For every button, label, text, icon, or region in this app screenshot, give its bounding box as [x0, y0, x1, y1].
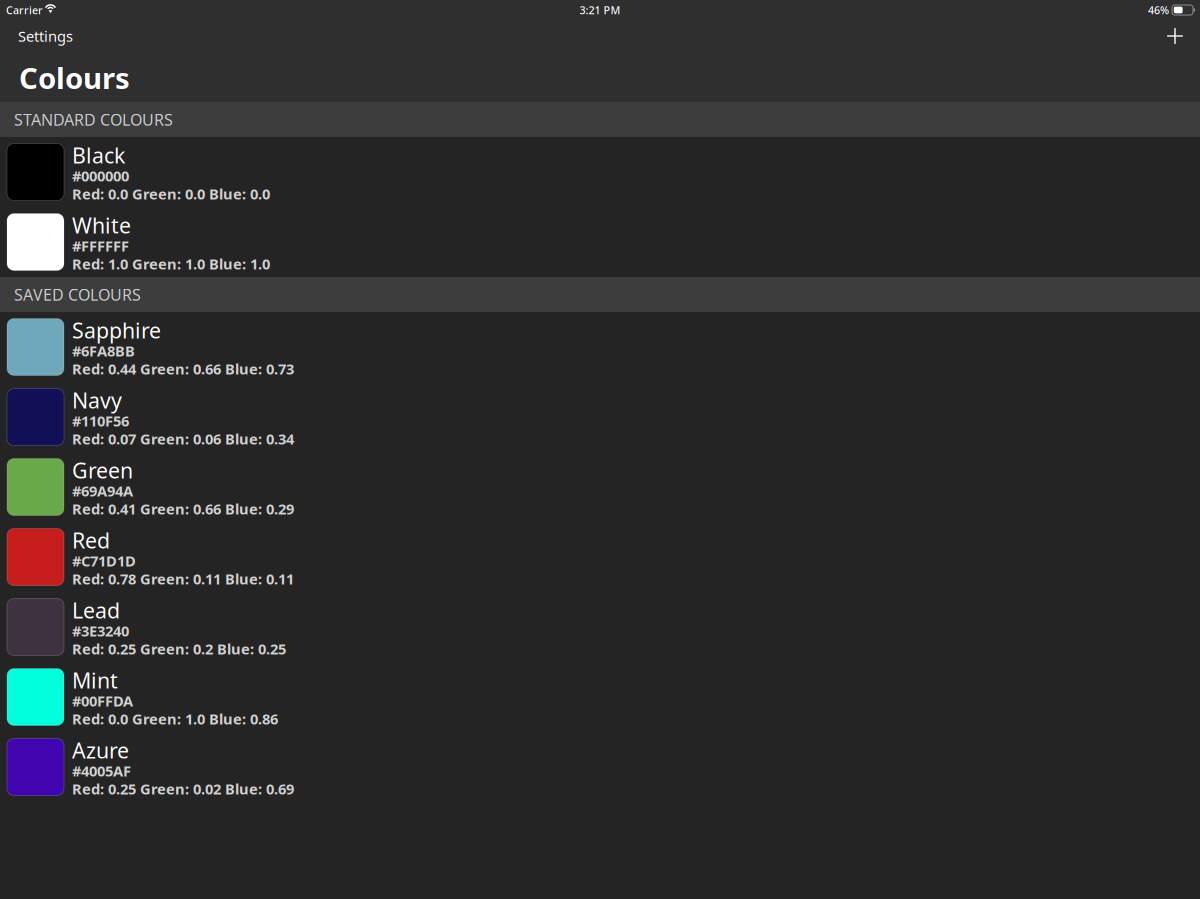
button[interactable]: Black — [0, 137, 1200, 207]
staticText: Red: 0.41 Green: 0.66 Blue: 0.29 — [72, 499, 294, 518]
staticText: Carrier — [6, 3, 43, 17]
staticText: Mint — [72, 666, 118, 694]
staticText: Sapphire — [72, 316, 161, 344]
staticText: Red: 0.25 Green: 0.2 Blue: 0.25 — [72, 639, 286, 658]
staticText: Navy — [72, 386, 122, 414]
staticText: 3:21 PM — [579, 3, 620, 17]
staticText: Red — [72, 526, 110, 554]
staticText: #69A94A — [72, 481, 133, 500]
staticText: #3E3240 — [72, 621, 129, 640]
staticText: Red: 0.25 Green: 0.02 Blue: 0.69 — [72, 779, 294, 798]
button[interactable]: Settings — [0, 21, 83, 51]
button[interactable]: Green — [0, 452, 1200, 522]
staticText: Red: 0.0 Green: 1.0 Blue: 0.86 — [72, 709, 278, 728]
button[interactable]: Navy — [0, 382, 1200, 452]
staticText: Red: 0.78 Green: 0.11 Blue: 0.11 — [72, 569, 294, 588]
staticText: STANDARD COLOURS — [14, 109, 173, 130]
staticText: #00FFDA — [72, 691, 133, 710]
staticText: #000000 — [72, 166, 129, 185]
button[interactable]: Azure — [0, 732, 1200, 802]
staticText: SAVED COLOURS — [14, 284, 141, 305]
staticText: 46% — [1148, 3, 1169, 17]
button[interactable]: White — [0, 207, 1200, 277]
staticText: #C71D1D — [72, 551, 136, 570]
staticText: Red: 0.0 Green: 0.0 Blue: 0.0 — [72, 184, 270, 203]
button[interactable]: Mint — [0, 662, 1200, 732]
button[interactable]: Add colour — [1162, 21, 1200, 51]
staticText: Red: 0.07 Green: 0.06 Blue: 0.34 — [72, 429, 294, 448]
staticText: #6FA8BB — [72, 341, 135, 360]
staticText: Azure — [72, 736, 129, 764]
staticText: Settings — [18, 26, 73, 46]
staticText: #FFFFFF — [72, 236, 129, 255]
staticText: Green — [72, 456, 133, 484]
staticText: Red: 0.44 Green: 0.66 Blue: 0.73 — [72, 359, 294, 378]
staticText: Red: 1.0 Green: 1.0 Blue: 1.0 — [72, 254, 270, 273]
button[interactable]: Lead — [0, 592, 1200, 662]
staticText: Black — [72, 141, 125, 169]
staticText: White — [72, 211, 131, 239]
button[interactable]: Red — [0, 522, 1200, 592]
button[interactable]: Sapphire — [0, 312, 1200, 382]
staticText: #110F56 — [72, 411, 129, 430]
staticText: #4005AF — [72, 761, 131, 780]
staticText: Lead — [72, 596, 120, 624]
staticText: Colours — [19, 58, 130, 97]
